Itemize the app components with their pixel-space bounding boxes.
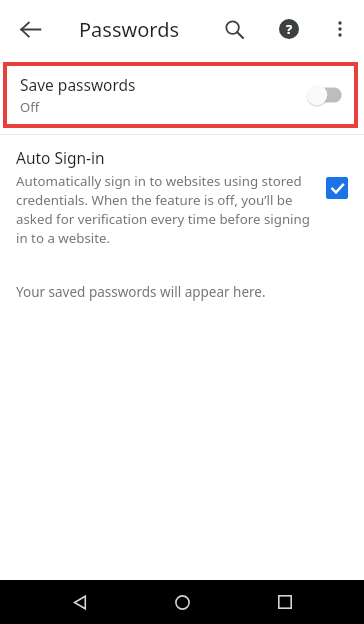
staticText: Off: [20, 98, 40, 116]
staticText: Save passwords: [20, 74, 136, 95]
staticText: ?: [286, 20, 293, 38]
button[interactable]: Auto Sign-in enabled: [326, 177, 348, 199]
button[interactable]: Save passwords: [3, 62, 358, 128]
button[interactable]: Auto Sign-in: [0, 135, 364, 257]
button[interactable]: Home: [159, 580, 205, 624]
button[interactable]: Search: [214, 9, 254, 49]
staticText: Auto Sign-in: [16, 147, 105, 168]
button[interactable]: More options: [320, 9, 360, 49]
button[interactable]: Help: [269, 9, 309, 49]
staticText: Automatically sign in to websites using …: [16, 172, 312, 247]
button[interactable]: Back: [57, 580, 103, 624]
staticText: Your saved passwords will appear here.: [16, 283, 266, 301]
button[interactable]: Recent apps: [262, 580, 308, 624]
staticText: Passwords: [79, 16, 180, 43]
button[interactable]: Back: [10, 9, 50, 49]
